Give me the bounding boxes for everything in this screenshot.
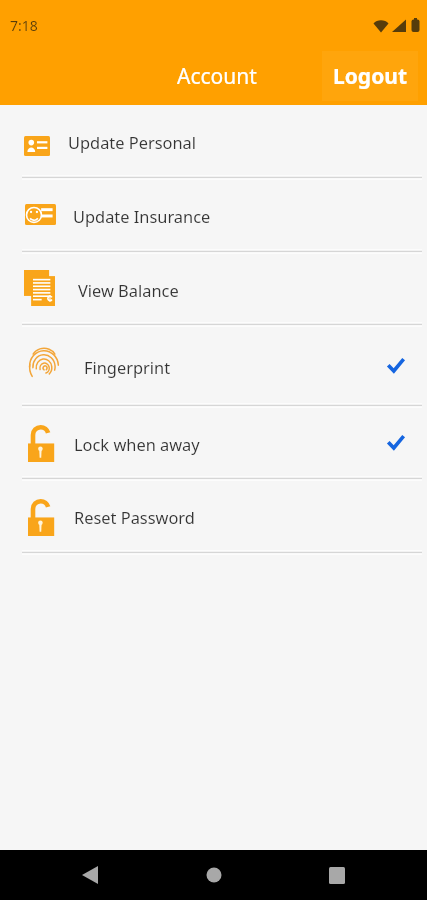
button[interactable]: Update Personal bbox=[0, 105, 427, 179]
staticText: Update Personal bbox=[68, 131, 197, 153]
button[interactable]: Update Insurance bbox=[0, 179, 427, 253]
button[interactable]: Account bbox=[157, 49, 277, 103]
staticText: Fingerprint bbox=[84, 356, 171, 378]
button[interactable]: View Balance bbox=[0, 253, 427, 326]
staticText: Account bbox=[177, 62, 257, 91]
button[interactable]: Lock when away bbox=[0, 407, 427, 480]
button[interactable]: Home bbox=[150, 850, 275, 900]
staticText: 7:18 bbox=[10, 16, 38, 35]
button[interactable]: Reset Password bbox=[0, 480, 427, 554]
staticText: Lock when away bbox=[74, 433, 200, 455]
staticText: Logout bbox=[333, 62, 408, 91]
staticText: Reset Password bbox=[74, 506, 195, 528]
button[interactable]: Fingerprint bbox=[0, 326, 427, 407]
staticText: Update Insurance bbox=[73, 205, 211, 227]
button[interactable]: Logout bbox=[322, 51, 418, 101]
button[interactable]: Back bbox=[0, 850, 150, 900]
staticText: View Balance bbox=[78, 279, 179, 301]
button[interactable]: Recent apps bbox=[275, 850, 427, 900]
